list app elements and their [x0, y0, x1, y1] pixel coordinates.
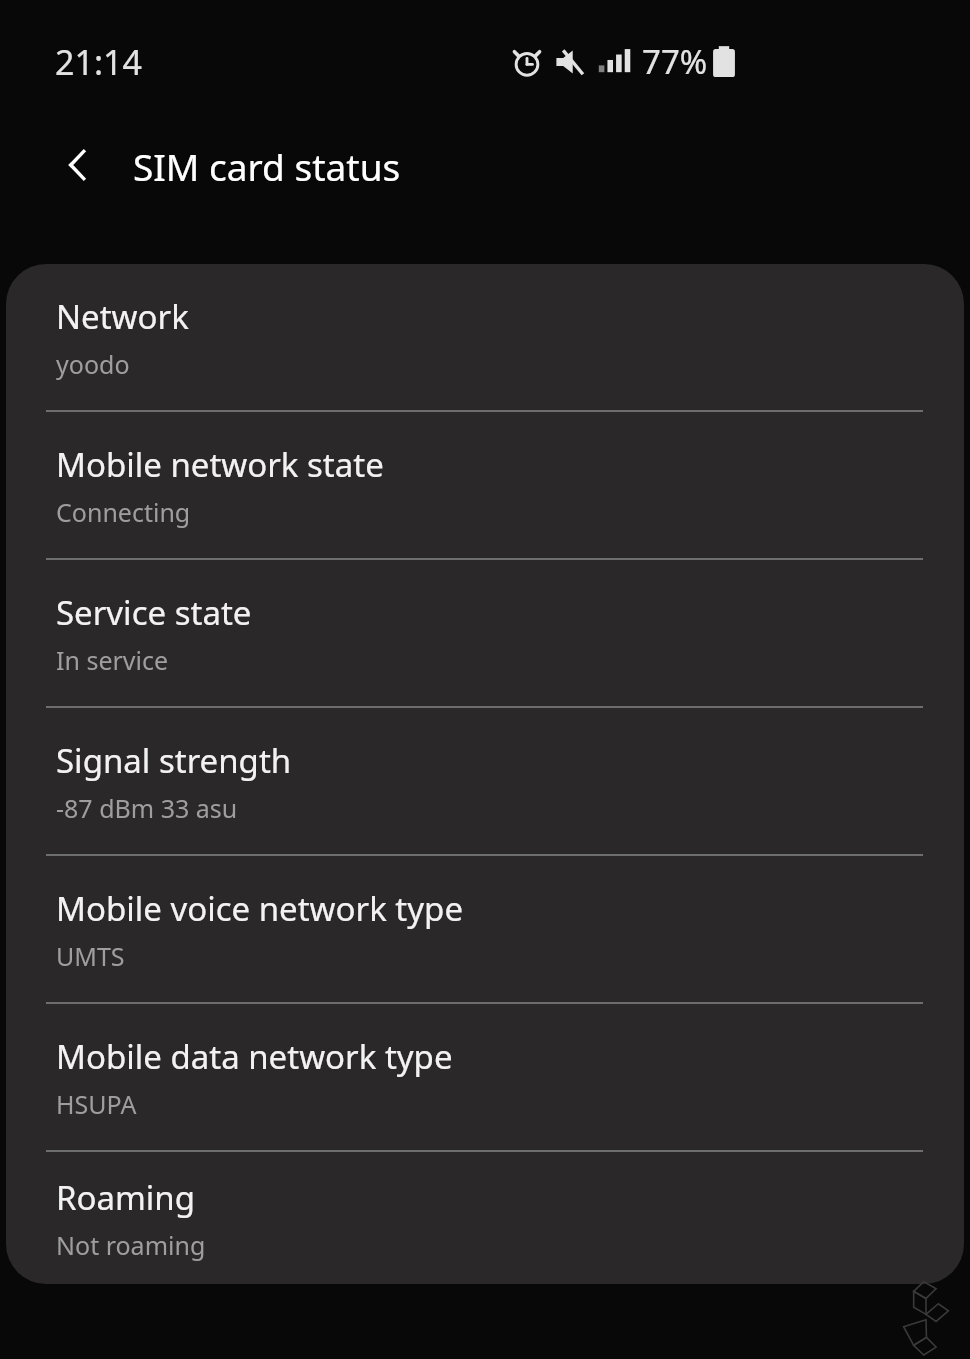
staticText: Network: [56, 294, 189, 339]
staticText: Connecting: [56, 495, 191, 529]
button[interactable]: Mobile data network type: [6, 1004, 964, 1150]
button[interactable]: Signal strength: [6, 708, 964, 854]
staticText: Service state: [56, 590, 252, 635]
staticText: In service: [56, 643, 169, 677]
button[interactable]: Network: [6, 264, 964, 410]
staticText: 77%: [642, 39, 708, 84]
button[interactable]: Mobile voice network type: [6, 856, 964, 1002]
staticText: 21:14: [55, 39, 142, 85]
staticText: Not roaming: [56, 1228, 206, 1262]
staticText: Signal strength: [56, 738, 292, 783]
staticText: HSUPA: [56, 1087, 137, 1121]
button[interactable]: Mobile network state: [6, 412, 964, 558]
staticText: Mobile network state: [56, 442, 384, 487]
button[interactable]: Service state: [6, 560, 964, 706]
staticText: SIM card status: [133, 141, 401, 191]
button[interactable]: Back: [42, 129, 114, 201]
staticText: Roaming: [56, 1175, 196, 1220]
staticText: Mobile voice network type: [56, 886, 463, 931]
staticText: -87 dBm 33 asu: [56, 791, 238, 825]
button[interactable]: Roaming: [6, 1152, 964, 1284]
staticText: UMTS: [56, 939, 125, 973]
staticText: yoodo: [56, 347, 130, 381]
staticText: Mobile data network type: [56, 1034, 453, 1079]
